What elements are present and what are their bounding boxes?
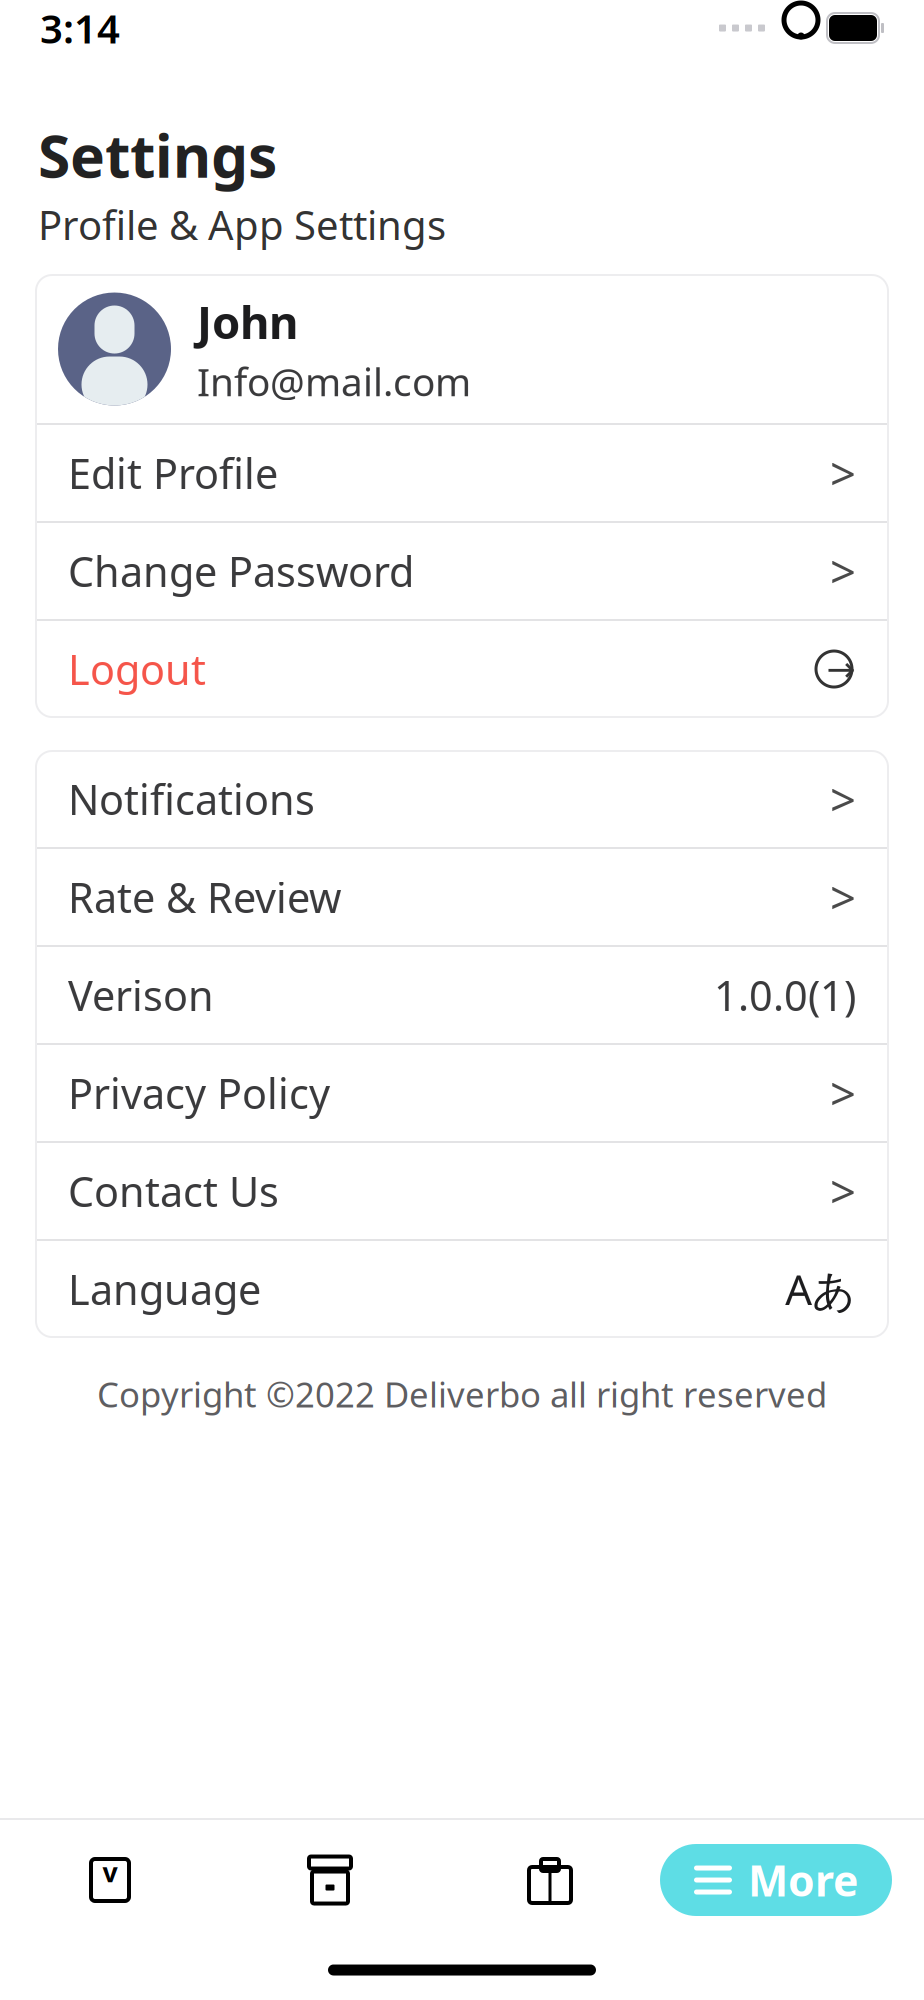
button[interactable]: Logout <box>36 621 888 717</box>
button[interactable]: Language <box>36 1241 888 1337</box>
staticText: John <box>197 291 298 351</box>
staticText: Settings <box>38 116 277 194</box>
button[interactable]: Verison <box>36 947 888 1043</box>
staticText: Info@mail.com <box>197 355 471 407</box>
button[interactable]: Change Password <box>36 523 888 619</box>
staticText: Verison <box>68 968 214 1022</box>
staticText: Notifications <box>68 772 315 826</box>
staticText: v <box>102 1854 117 1890</box>
staticText: > <box>830 1161 856 1221</box>
button[interactable]: Notifications <box>36 751 888 847</box>
staticText: Copyright ©2022 Deliverbo all right rese… <box>97 1371 827 1417</box>
staticText: Profile & App Settings <box>38 198 446 251</box>
staticText: > <box>830 541 856 601</box>
staticText: > <box>830 769 856 829</box>
button[interactable]: Orders <box>220 1834 440 1926</box>
button[interactable]: Contact Us <box>36 1143 888 1239</box>
staticText: Edit Profile <box>68 446 278 500</box>
staticText: 1.0.0(1) <box>714 968 856 1022</box>
button[interactable]: More <box>660 1844 892 1916</box>
staticText: 3:14 <box>40 1 120 54</box>
button[interactable]: Rate & Review <box>36 849 888 945</box>
staticText: Language <box>68 1262 261 1316</box>
staticText: Contact Us <box>68 1164 279 1218</box>
staticText: → <box>826 649 855 689</box>
button[interactable]: Privacy Policy <box>36 1045 888 1141</box>
staticText: > <box>830 867 856 927</box>
button[interactable]: Edit Profile <box>36 425 888 521</box>
button[interactable]: John <box>36 275 888 423</box>
staticText: Logout <box>68 642 206 696</box>
button[interactable]: Inbox <box>0 1834 220 1926</box>
staticText: More <box>748 1852 858 1908</box>
staticText: Change Password <box>68 544 414 598</box>
button[interactable]: Jobs <box>440 1834 660 1926</box>
staticText: Privacy Policy <box>68 1066 330 1120</box>
staticText: Rate & Review <box>68 870 341 924</box>
staticText: > <box>830 1063 856 1123</box>
staticText: Aあ <box>785 1261 856 1317</box>
staticText: > <box>830 443 856 503</box>
